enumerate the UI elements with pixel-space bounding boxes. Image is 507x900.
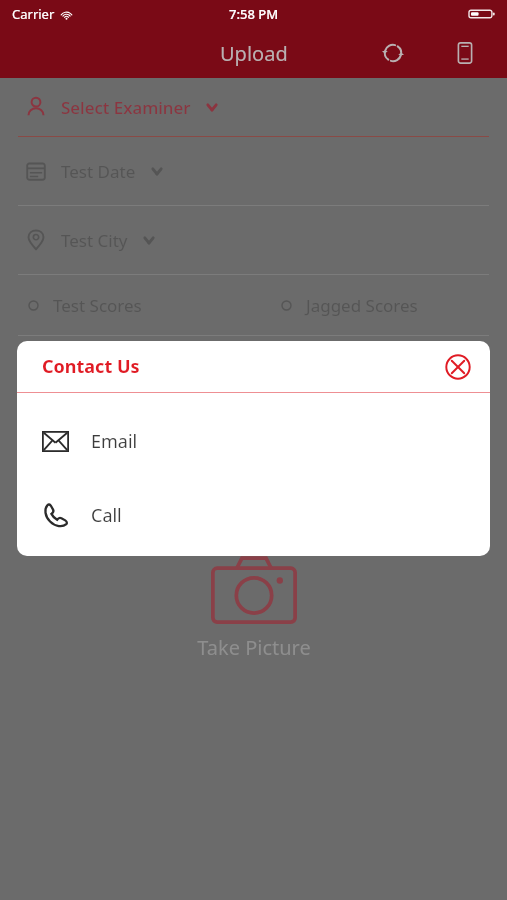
staticText: Test Scores [53, 294, 142, 317]
staticText: Take Picture [197, 634, 311, 661]
button[interactable]: Test Date [0, 137, 507, 206]
staticText: Call [91, 503, 122, 528]
button[interactable]: Device [443, 31, 487, 75]
staticText: Carrier [12, 5, 55, 23]
button[interactable]: Call [17, 490, 490, 540]
staticText: Jagged Scores [306, 294, 418, 317]
staticText: Email [91, 429, 138, 454]
staticText: Test Date [61, 160, 136, 183]
button[interactable]: Test Scores [28, 294, 253, 317]
staticText: Test City [61, 229, 128, 252]
staticText: Select Examiner [61, 96, 191, 119]
button[interactable]: Jagged Scores [281, 294, 507, 317]
staticText: 7:58 PM [229, 5, 279, 23]
staticText: Upload [220, 40, 288, 67]
button[interactable]: Refresh [371, 31, 415, 75]
button[interactable]: Select Examiner [0, 78, 507, 137]
button[interactable]: Email [17, 416, 490, 466]
staticText: Contact Us [42, 354, 140, 379]
button[interactable]: Close [438, 347, 478, 387]
